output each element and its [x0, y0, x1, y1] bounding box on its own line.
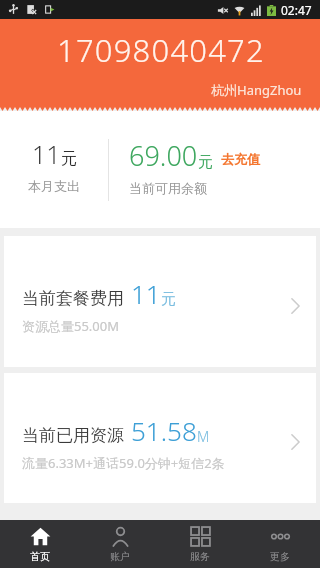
staticText: 元 [198, 153, 213, 172]
button[interactable]: 服务 [160, 520, 240, 568]
staticText: 更多 [270, 550, 290, 563]
staticText: 11 [131, 276, 161, 311]
staticText: 51.58 [131, 413, 197, 448]
staticText: 当前套餐费用 [22, 288, 124, 309]
staticText: 去充值 [221, 151, 260, 167]
button[interactable]: 账户 [80, 520, 160, 568]
staticText: 69.00 [129, 137, 198, 174]
staticText: M [197, 427, 210, 446]
button[interactable]: 当前套餐费用 [4, 236, 316, 367]
staticText: 服务 [190, 550, 210, 563]
staticText: 资源总量55.00M [22, 317, 120, 335]
button[interactable]: 更多 [240, 520, 320, 568]
button[interactable]: 去充值 [219, 149, 262, 169]
staticText: 首页 [30, 550, 50, 563]
button[interactable]: 当前已用资源 [4, 373, 316, 503]
staticText: 流量6.33M+通话59.0分钟+短信2条 [22, 454, 225, 472]
staticText: 元 [161, 290, 176, 309]
button[interactable]: 首页 [0, 520, 80, 568]
staticText: 账户 [110, 550, 130, 563]
staticText: 当前可用余额 [129, 180, 207, 196]
button[interactable]: 69.00 [109, 137, 320, 196]
button[interactable]: 11 [0, 137, 108, 194]
staticText: 元 [61, 149, 77, 169]
staticText: 11 [32, 137, 61, 171]
staticText: 02:47 [281, 2, 312, 18]
staticText: 本月支出 [28, 178, 80, 194]
staticText: 17098040472 [57, 29, 265, 71]
staticText: 杭州HangZhou [211, 81, 302, 99]
staticText: 当前已用资源 [22, 425, 124, 446]
